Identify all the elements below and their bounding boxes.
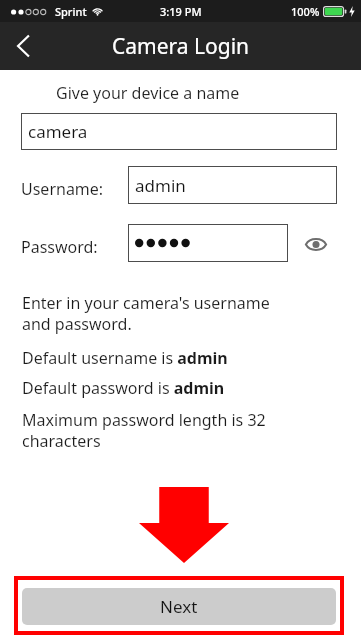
staticText: Next (160, 595, 198, 618)
staticText: Give your device a name (56, 82, 240, 104)
staticText: Sprint (55, 4, 87, 19)
button[interactable]: Next (22, 588, 336, 625)
staticText: Maximum password length is 32 characters (22, 409, 266, 452)
staticText: 3:19 PM (160, 4, 202, 19)
button[interactable] (128, 224, 288, 262)
button[interactable]: Show password (300, 228, 332, 260)
staticText: Enter in your camera's username and pass… (22, 292, 270, 335)
staticText: Default username is admin (22, 347, 228, 369)
staticText: admin (135, 174, 186, 197)
staticText: camera (28, 120, 88, 143)
staticText: Username: (21, 178, 104, 200)
button[interactable]: Back (0, 23, 46, 69)
staticText: 100% (291, 4, 320, 19)
button[interactable]: camera (21, 113, 337, 150)
staticText: Default password is admin (22, 377, 225, 399)
staticText: Password: (21, 236, 98, 258)
staticText: Camera Login (112, 32, 250, 61)
button[interactable]: admin (128, 166, 337, 204)
